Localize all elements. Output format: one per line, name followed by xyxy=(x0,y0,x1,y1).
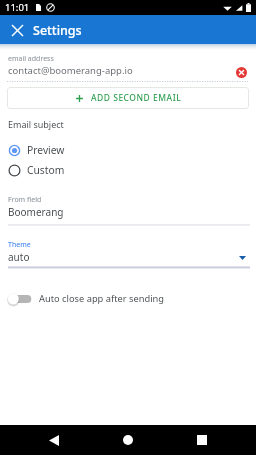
staticText: ADD SECOND EMAIL xyxy=(91,92,182,104)
button[interactable]: Remove email xyxy=(233,64,249,80)
button[interactable]: Close xyxy=(6,19,28,41)
staticText: Email subject xyxy=(8,118,64,130)
button[interactable]: Custom xyxy=(0,162,256,178)
staticText: Settings xyxy=(33,22,82,39)
staticText: email address xyxy=(8,54,54,64)
staticText: 11:01 xyxy=(5,1,30,14)
staticText: Custom xyxy=(27,163,65,177)
button[interactable]: Preview xyxy=(0,142,256,158)
button[interactable]: auto xyxy=(0,249,256,267)
staticText: Auto close app after sending xyxy=(39,292,165,305)
button[interactable]: Auto close app after sending xyxy=(0,290,256,307)
staticText: Preview xyxy=(27,143,65,157)
staticText: auto xyxy=(8,250,30,264)
button[interactable]: Home xyxy=(113,425,143,455)
staticText: From field xyxy=(8,195,42,205)
staticText: Theme xyxy=(8,240,31,250)
button[interactable]: Recent apps xyxy=(187,425,217,455)
staticText: contact@boomerang-app.io xyxy=(8,64,133,77)
button[interactable]: ADD SECOND EMAIL xyxy=(7,87,249,109)
staticText: Boomerang xyxy=(8,205,64,219)
button[interactable]: Back xyxy=(39,425,69,455)
